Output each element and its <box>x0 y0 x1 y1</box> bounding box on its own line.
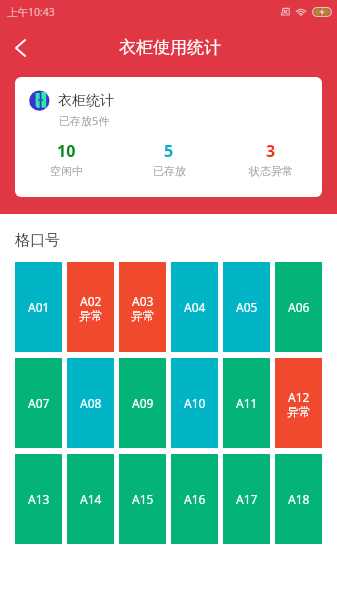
staticText: 空闲中 <box>50 164 83 178</box>
staticText: A14 <box>80 491 102 507</box>
staticText: A11 <box>236 395 258 411</box>
button[interactable]: A03 <box>119 262 166 352</box>
staticText: 异常 <box>131 308 155 323</box>
staticText: A02 <box>80 293 102 309</box>
button[interactable]: A04 <box>171 262 218 352</box>
staticText: 3 <box>266 140 276 162</box>
staticText: 5 <box>164 140 174 162</box>
staticText: 上午10:43 <box>7 5 55 19</box>
button[interactable]: A16 <box>171 454 218 544</box>
staticText: A04 <box>184 299 206 315</box>
button[interactable]: A05 <box>223 262 270 352</box>
staticText: A06 <box>288 299 310 315</box>
staticText: 异常 <box>287 404 311 419</box>
button[interactable]: A08 <box>67 358 114 448</box>
staticText: 异常 <box>79 308 103 323</box>
staticText: 已存放5件 <box>59 113 110 128</box>
staticText: A16 <box>184 491 206 507</box>
button[interactable]: A14 <box>67 454 114 544</box>
staticText: A08 <box>80 395 102 411</box>
button[interactable]: A06 <box>275 262 322 352</box>
staticText: 状态异常 <box>249 164 293 178</box>
staticText: A17 <box>236 491 258 507</box>
button[interactable]: A12 <box>275 358 322 448</box>
staticText: A05 <box>236 299 258 315</box>
staticText: A13 <box>28 491 50 507</box>
button[interactable]: A02 <box>67 262 114 352</box>
button[interactable]: A17 <box>223 454 270 544</box>
button[interactable]: A11 <box>223 358 270 448</box>
staticText: A03 <box>132 293 154 309</box>
button[interactable]: A09 <box>119 358 166 448</box>
button[interactable]: 衣柜统计 <box>15 77 322 197</box>
staticText: A18 <box>288 491 310 507</box>
button[interactable]: Back <box>0 26 40 66</box>
button[interactable]: A01 <box>15 262 62 352</box>
button[interactable]: A10 <box>171 358 218 448</box>
staticText: 格口号 <box>15 231 60 250</box>
staticText: A01 <box>28 299 50 315</box>
staticText: 衣柜使用统计 <box>119 37 221 58</box>
button[interactable]: A18 <box>275 454 322 544</box>
staticText: A15 <box>132 491 154 507</box>
staticText: A07 <box>28 395 50 411</box>
staticText: 已存放 <box>153 164 186 178</box>
staticText: A12 <box>288 389 310 405</box>
button[interactable]: A07 <box>15 358 62 448</box>
staticText: 10 <box>57 140 76 162</box>
button[interactable]: A15 <box>119 454 166 544</box>
staticText: A10 <box>184 395 206 411</box>
button[interactable]: A13 <box>15 454 62 544</box>
staticText: 衣柜统计 <box>58 92 114 110</box>
staticText: A09 <box>132 395 154 411</box>
